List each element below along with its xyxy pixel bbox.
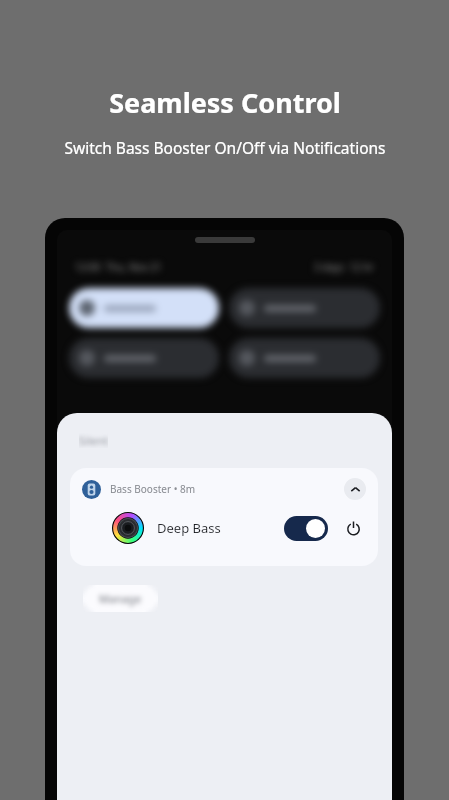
button[interactable]: Collapse notification — [344, 478, 366, 500]
staticText: 12:00 Thu, Nov 21 — [75, 260, 162, 274]
button[interactable] — [69, 288, 219, 328]
staticText: Seamless Control — [109, 84, 341, 121]
staticText: Bass Booster • 8m — [110, 482, 196, 496]
staticText: 3 days 12 hr — [314, 260, 374, 274]
button[interactable] — [229, 338, 380, 378]
staticText: Switch Bass Booster On/Off via Notificat… — [64, 137, 386, 158]
button[interactable]: Bass Booster • 8m — [70, 468, 378, 566]
button[interactable]: Power — [342, 517, 364, 539]
staticText: Manage — [99, 591, 142, 606]
staticText: Silent — [79, 433, 108, 448]
button[interactable] — [69, 338, 219, 378]
button[interactable] — [229, 288, 380, 328]
button[interactable]: Deep Bass toggle, on — [284, 516, 328, 541]
staticText: Deep Bass — [157, 519, 221, 537]
